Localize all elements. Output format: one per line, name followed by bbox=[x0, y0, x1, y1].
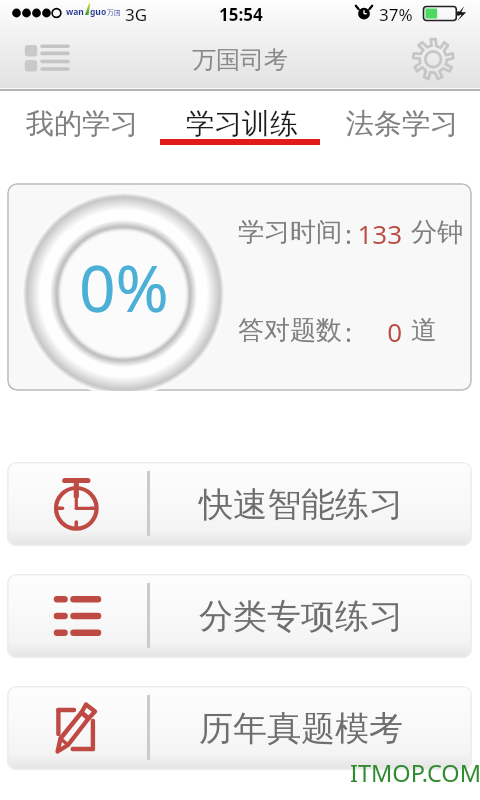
button[interactable]: 历年真题模考 bbox=[7, 686, 472, 770]
staticText: 0% bbox=[79, 244, 169, 331]
staticText: 我的学习 bbox=[26, 106, 138, 141]
staticText: 3G bbox=[125, 3, 148, 26]
staticText: : bbox=[345, 216, 352, 251]
button[interactable]: 快速智能练习 bbox=[7, 462, 472, 546]
button[interactable]: Settings bbox=[410, 28, 480, 88]
staticText: 法条学习 bbox=[346, 106, 458, 141]
staticText: 15:54 bbox=[219, 3, 263, 26]
staticText: 分类专项练习 bbox=[199, 595, 403, 638]
staticText: 133 bbox=[339, 216, 402, 251]
staticText: 学习训练 bbox=[186, 106, 298, 141]
button[interactable]: 学习训练 bbox=[160, 91, 320, 151]
button[interactable]: 分类专项练习 bbox=[7, 574, 472, 658]
staticText: 学习时间 bbox=[238, 216, 342, 249]
staticText: 0 bbox=[339, 314, 402, 349]
button[interactable]: 我的学习 bbox=[0, 91, 160, 151]
staticText: ITMOP.COM bbox=[350, 757, 480, 789]
staticText: guo bbox=[90, 6, 107, 18]
staticText: 答对题数 bbox=[238, 314, 342, 347]
staticText: 历年真题模考 bbox=[199, 707, 403, 750]
staticText: 37% bbox=[379, 3, 413, 26]
staticText: 快速智能练习 bbox=[199, 483, 403, 526]
button[interactable]: 法条学习 bbox=[320, 91, 480, 151]
staticText: 万国司考 bbox=[192, 45, 288, 75]
button[interactable]: Menu bbox=[0, 28, 90, 88]
staticText: 分钟 bbox=[411, 216, 463, 249]
staticText: : bbox=[345, 314, 352, 349]
staticText: 万国 bbox=[107, 8, 121, 17]
staticText: 道 bbox=[411, 314, 437, 347]
staticText: wan bbox=[66, 6, 84, 18]
